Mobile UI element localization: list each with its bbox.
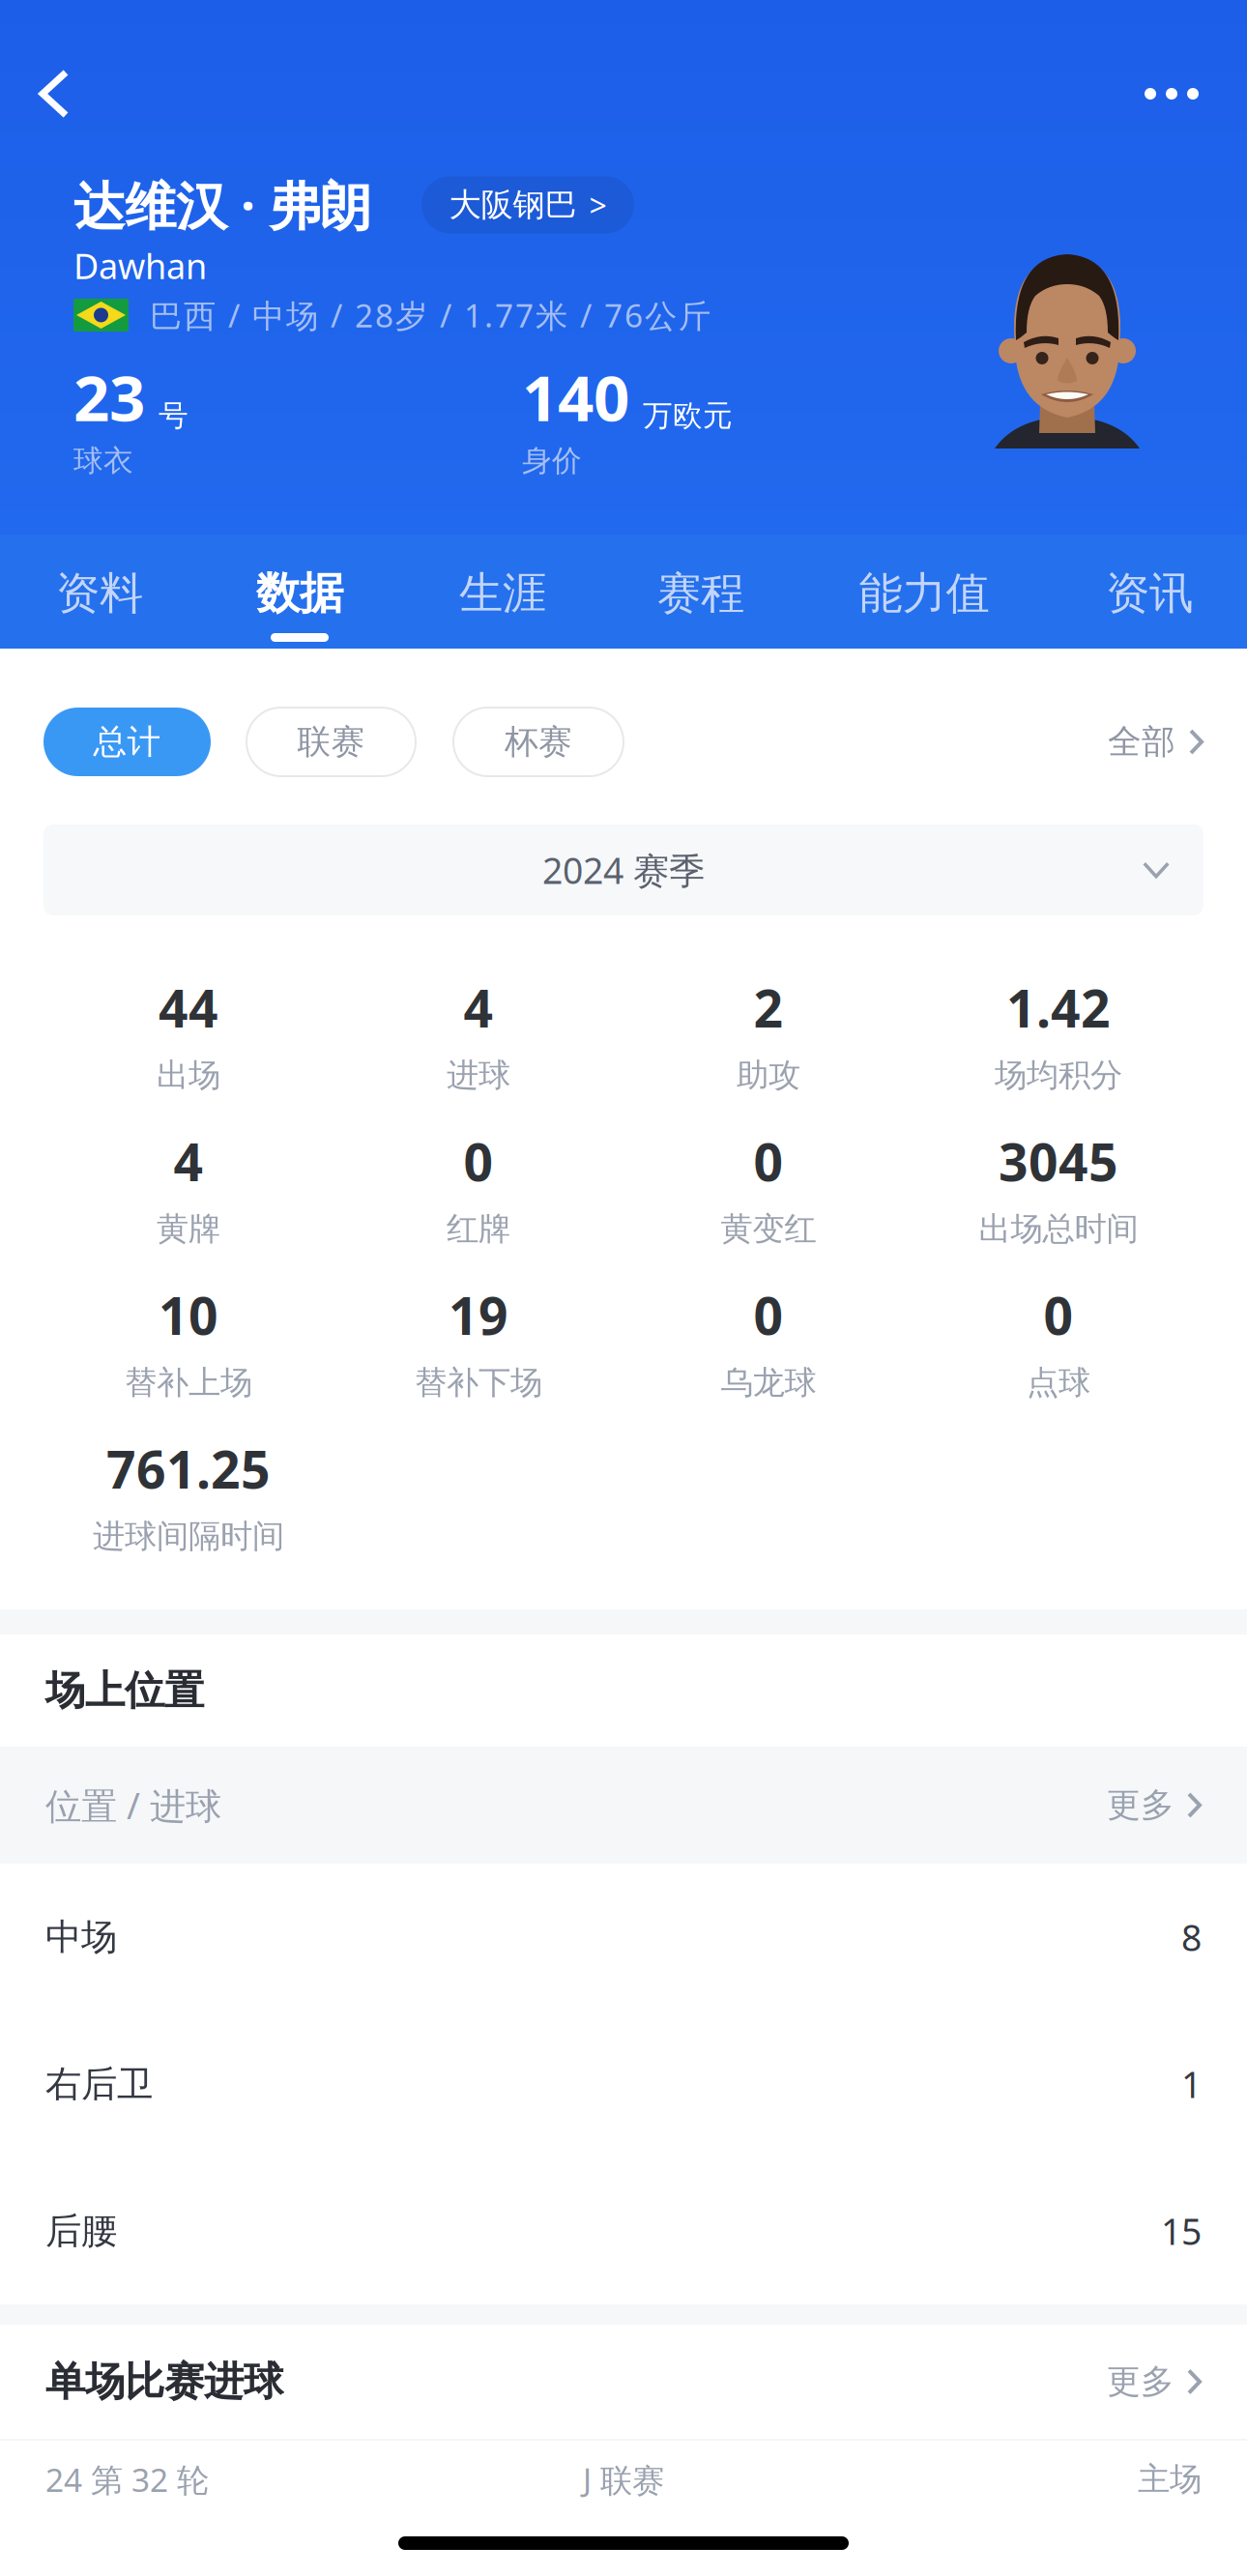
staticText: 达维汉 · 弗朗: [73, 171, 371, 239]
button[interactable]: 资讯: [1052, 535, 1247, 649]
staticText: 8: [1181, 1913, 1202, 1961]
button[interactable]: 更多: [1084, 2344, 1202, 2420]
staticText: 资讯: [1106, 566, 1193, 620]
staticText: 更多: [1107, 1785, 1174, 1826]
staticText: 位置 / 进球: [45, 1781, 221, 1829]
staticText: 右后卫: [45, 2062, 153, 2106]
button[interactable]: 能力值: [797, 535, 1052, 649]
staticText: 数据: [256, 566, 343, 620]
staticText: 助攻: [737, 1055, 800, 1095]
staticText: 24 第 32 轮: [45, 2458, 209, 2501]
staticText: 2: [754, 973, 783, 1042]
button[interactable]: 右后卫: [0, 2011, 1247, 2157]
staticText: 3045: [999, 1127, 1118, 1195]
button[interactable]: 更多: [1084, 1767, 1202, 1843]
staticText: 能力值: [859, 566, 989, 620]
staticText: 1.42: [1006, 973, 1111, 1042]
staticText: 10: [159, 1281, 218, 1349]
staticText: 点球: [1027, 1363, 1090, 1402]
staticText: 23: [73, 355, 145, 439]
button[interactable]: 全部: [1108, 708, 1203, 776]
staticText: 联赛: [297, 721, 365, 762]
staticText: 生涯: [459, 566, 546, 620]
staticText: 场上位置: [45, 1666, 204, 1715]
staticText: 中场: [45, 1915, 117, 1959]
button[interactable]: 后腰: [0, 2157, 1247, 2304]
staticText: 140: [522, 355, 629, 439]
staticText: 更多: [1107, 2361, 1174, 2402]
staticText: 万欧元: [643, 397, 733, 434]
staticText: 场均积分: [995, 1055, 1122, 1095]
staticText: 巴西 / 中场 / 28岁 / 1.77米 / 76公斤: [150, 294, 710, 336]
staticText: 761.25: [106, 1434, 271, 1503]
button[interactable]: 赛程: [605, 535, 797, 649]
button[interactable]: 24 第 32 轮: [0, 2441, 1247, 2518]
staticText: 出场总时间: [979, 1209, 1138, 1249]
staticText: 红牌: [447, 1209, 510, 1249]
staticText: 后腰: [45, 2209, 117, 2253]
button[interactable]: More: [1145, 47, 1247, 140]
button[interactable]: Back: [0, 47, 71, 140]
button[interactable]: 中场: [0, 1864, 1247, 2011]
staticText: 15: [1161, 2207, 1202, 2255]
staticText: 替补下场: [415, 1363, 542, 1402]
staticText: 球衣: [73, 443, 133, 479]
button[interactable]: 数据: [199, 535, 400, 649]
staticText: 黄牌: [157, 1209, 220, 1249]
button[interactable]: 资料: [0, 535, 199, 649]
staticText: 号: [159, 397, 188, 434]
staticText: 44: [159, 973, 218, 1042]
staticText: 进球间隔时间: [93, 1516, 284, 1556]
staticText: 进球: [447, 1055, 510, 1095]
staticText: 大阪钢巴: [449, 185, 577, 225]
button[interactable]: 大阪钢巴: [421, 176, 634, 233]
staticText: J 联赛: [583, 2458, 664, 2501]
staticText: 0: [754, 1281, 783, 1349]
staticText: 0: [1044, 1281, 1073, 1349]
staticText: 替补上场: [125, 1363, 252, 1402]
staticText: 0: [754, 1127, 783, 1195]
button[interactable]: 杯赛: [453, 708, 623, 776]
button[interactable]: 总计: [43, 708, 211, 776]
staticText: 1: [1181, 2060, 1202, 2108]
staticText: 全部: [1108, 721, 1175, 762]
button[interactable]: 生涯: [400, 535, 605, 649]
staticText: 黄变红: [721, 1209, 816, 1249]
staticText: 单场比赛进球: [45, 2357, 283, 2406]
staticText: 2024 赛季: [542, 846, 705, 894]
staticText: 杯赛: [505, 721, 572, 762]
staticText: 身价: [522, 443, 582, 479]
staticText: 总计: [93, 721, 161, 762]
staticText: 出场: [157, 1055, 220, 1095]
staticText: 19: [449, 1281, 508, 1349]
staticText: 资料: [56, 566, 143, 620]
staticText: Dawhan: [73, 243, 207, 289]
staticText: >: [589, 184, 607, 226]
staticText: 乌龙球: [721, 1363, 816, 1402]
staticText: 4: [464, 973, 493, 1042]
staticText: 主场: [1138, 2460, 1202, 2499]
staticText: 0: [464, 1127, 493, 1195]
button[interactable]: 联赛: [246, 708, 416, 776]
staticText: 4: [174, 1127, 203, 1195]
button[interactable]: 2024 赛季: [43, 825, 1203, 915]
staticText: 赛程: [657, 566, 744, 620]
